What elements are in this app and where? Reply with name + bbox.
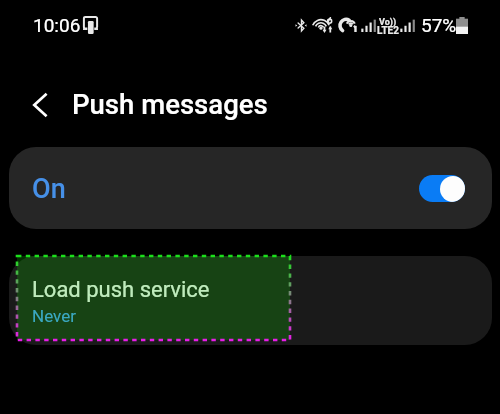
staticText: Push messages (72, 88, 268, 120)
staticText: On (32, 173, 66, 205)
button[interactable] (17, 256, 290, 340)
staticText: Never (32, 306, 76, 326)
staticText: 57% (421, 14, 457, 36)
button[interactable]: On (9, 147, 492, 229)
button[interactable]: Back (19, 83, 63, 127)
staticText: 10:06 (33, 14, 81, 36)
staticText: LTE2 (377, 25, 399, 37)
staticText: Load push service (32, 277, 210, 303)
staticText: Vo)) (379, 17, 397, 28)
